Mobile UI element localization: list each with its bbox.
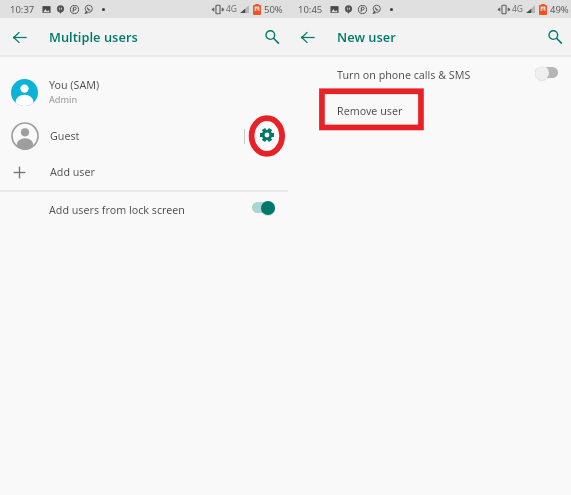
staticText: 4G	[512, 3, 524, 15]
staticText: Remove user	[337, 104, 403, 119]
button[interactable]: Search	[256, 18, 288, 56]
button[interactable]: Turn on phone calls & SMS	[288, 59, 571, 91]
button[interactable]: Remove user	[288, 91, 571, 132]
staticText: Add user	[50, 165, 95, 180]
button[interactable]: Navigate up	[288, 18, 326, 56]
staticText: Turn on phone calls & SMS	[337, 68, 471, 83]
button[interactable]: Add user	[0, 156, 288, 189]
button[interactable]: Turn on phone calls and SMS toggle	[535, 65, 558, 80]
button[interactable]: Search	[539, 18, 571, 56]
staticText: New user	[337, 28, 396, 45]
staticText: Guest	[50, 129, 80, 144]
button[interactable]: Guest	[0, 117, 288, 155]
staticText: 4G	[226, 3, 238, 15]
staticText: 49%	[550, 3, 569, 16]
button[interactable]: Guest settings	[245, 117, 288, 155]
button[interactable]: You (SAM)	[0, 73, 288, 111]
staticText: You (SAM)	[49, 78, 100, 93]
button[interactable]: Navigate up	[0, 18, 38, 56]
staticText: Multiple users	[49, 28, 138, 45]
staticText: 50%	[264, 3, 283, 16]
staticText: 10:37	[10, 3, 35, 16]
button[interactable]: Add users from lock screen toggle	[252, 200, 275, 215]
button[interactable]: Add users from lock screen	[0, 192, 288, 228]
staticText: Add users from lock screen	[49, 203, 185, 218]
staticText: Admin	[49, 93, 78, 106]
staticText: 10:45	[298, 3, 323, 16]
